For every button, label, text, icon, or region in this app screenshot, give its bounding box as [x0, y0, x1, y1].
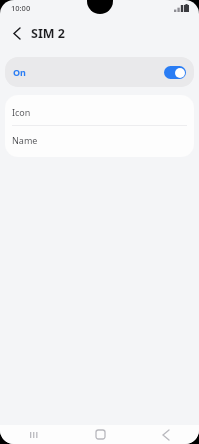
staticText: SIM 2 — [31, 25, 65, 42]
staticText: Name — [12, 134, 38, 146]
staticText: 10:00 — [11, 3, 31, 13]
button[interactable]: Home — [67, 425, 133, 444]
staticText: On — [13, 66, 26, 78]
button[interactable]: Back — [133, 425, 199, 444]
button[interactable]: Icon — [5, 98, 194, 125]
button[interactable]: Back — [7, 23, 27, 43]
button[interactable]: Name — [5, 126, 194, 153]
staticText: Icon — [12, 106, 31, 118]
button[interactable]: Recents — [0, 425, 67, 444]
button[interactable]: On — [5, 57, 194, 87]
